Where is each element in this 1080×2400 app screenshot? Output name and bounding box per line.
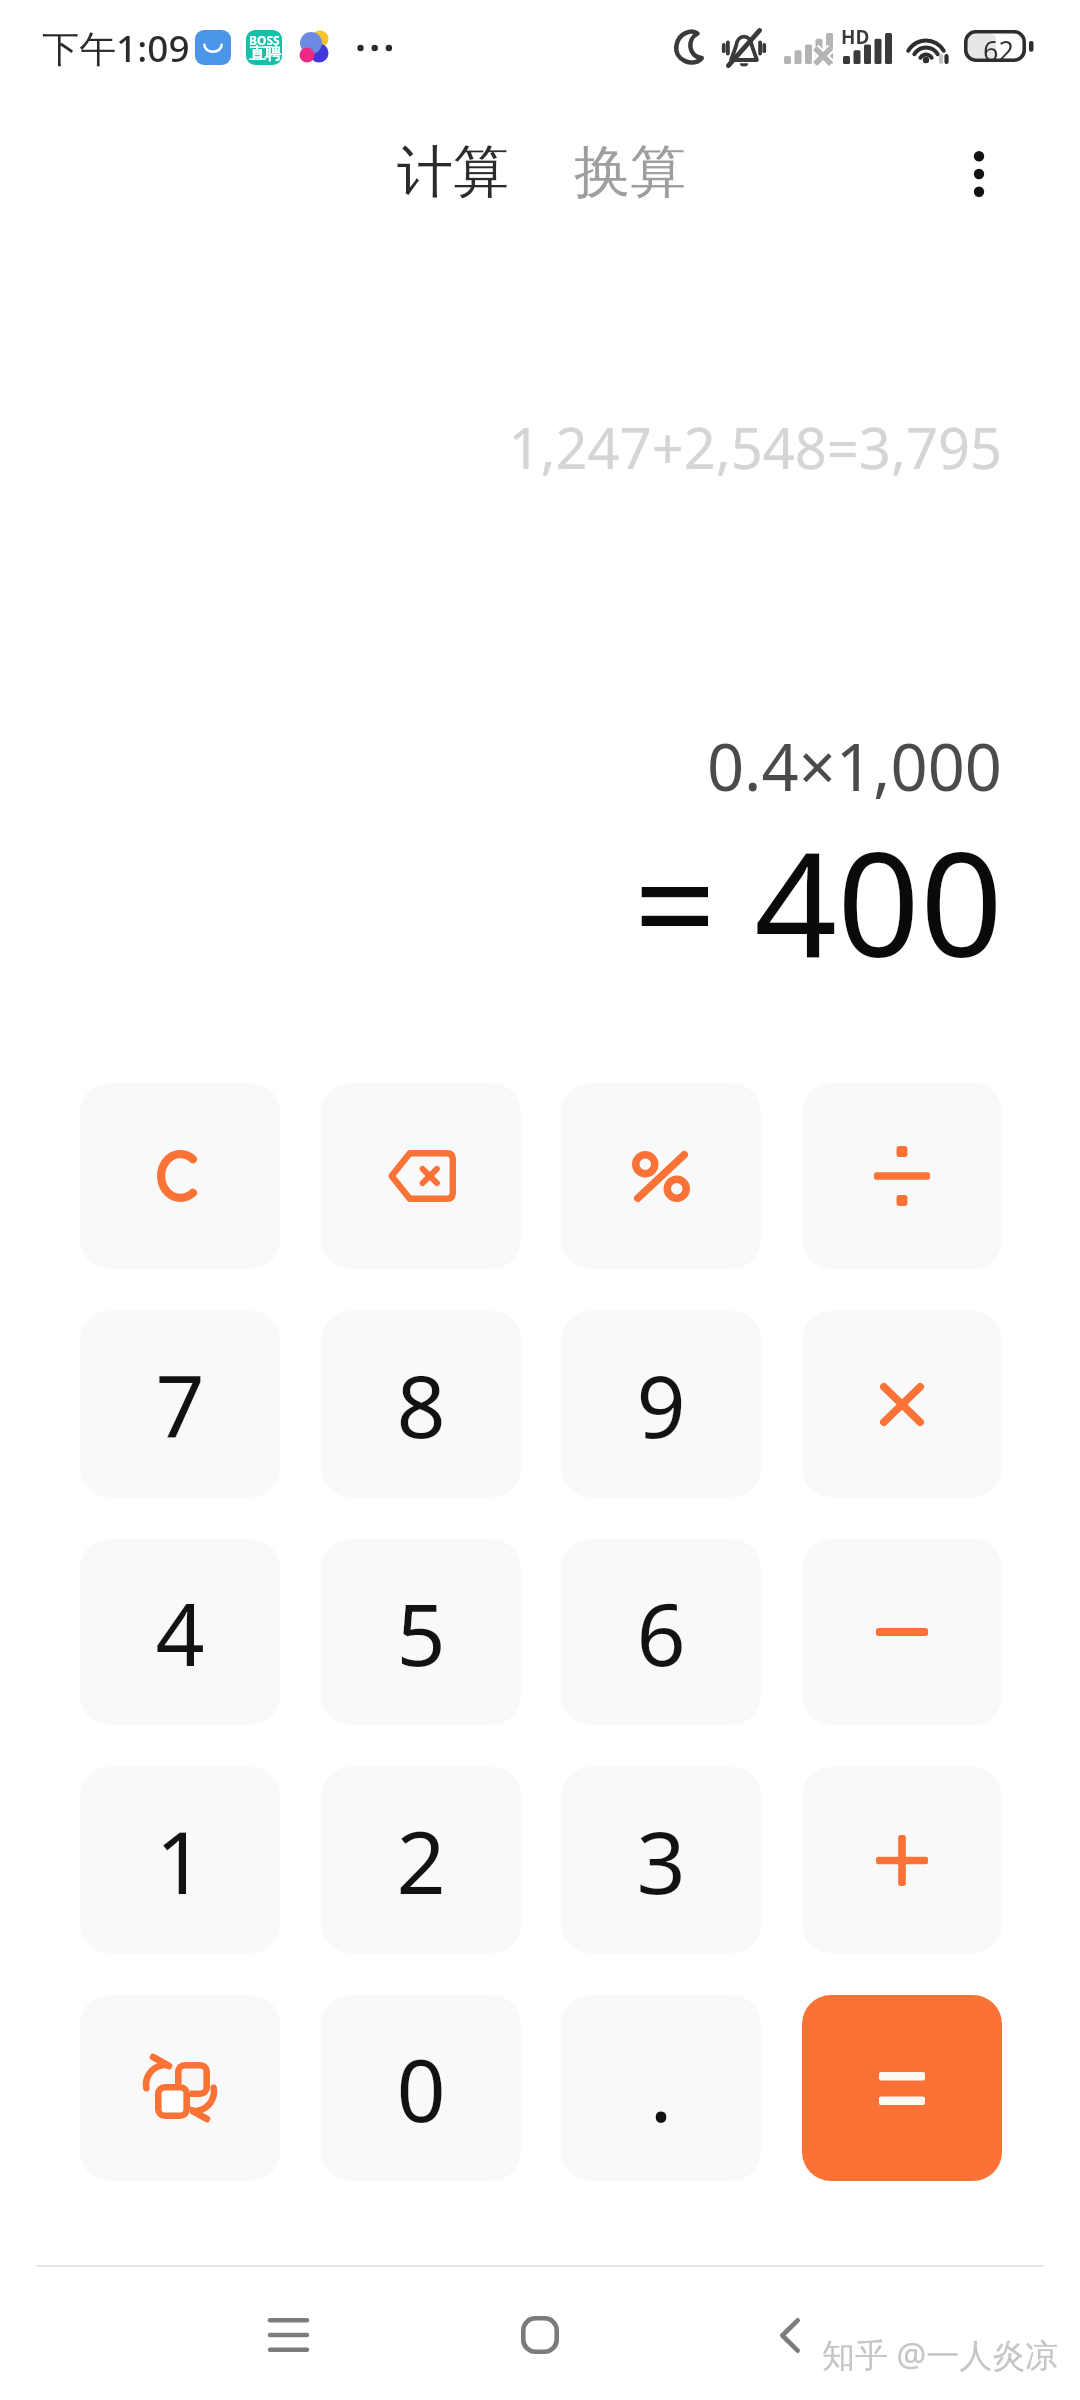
button[interactable]: More options bbox=[939, 134, 1019, 214]
staticText: 1,247+2,548=3,795 bbox=[0, 409, 1002, 485]
staticText: 下午1:09 bbox=[42, 22, 190, 73]
staticText: 1 bbox=[155, 1802, 205, 1919]
staticText: 7 bbox=[155, 1346, 205, 1463]
button[interactable]: 0 bbox=[321, 1995, 521, 2181]
staticText: 5 bbox=[396, 1574, 446, 1691]
button[interactable]: 7 bbox=[80, 1311, 280, 1497]
button[interactable]: 2 bbox=[321, 1767, 521, 1953]
button[interactable]: Convert bbox=[80, 1995, 280, 2181]
staticText: 换算 bbox=[574, 137, 686, 208]
staticText: 计算 bbox=[397, 137, 509, 208]
staticText: HD bbox=[841, 24, 870, 50]
staticText: 直聘 bbox=[249, 44, 281, 64]
staticText: 0.4×1,000 bbox=[0, 722, 1002, 811]
button[interactable]: Back bbox=[730, 2275, 850, 2395]
button[interactable]: 4 bbox=[80, 1539, 280, 1725]
button[interactable]: 8 bbox=[321, 1311, 521, 1497]
staticText: 6 bbox=[636, 1574, 686, 1691]
staticText: = 400 bbox=[0, 802, 1003, 999]
button[interactable]: 换算 bbox=[557, 130, 702, 214]
staticText: 2 bbox=[396, 1802, 446, 1919]
button[interactable]: Home bbox=[480, 2275, 600, 2395]
button[interactable]: 5 bbox=[321, 1539, 521, 1725]
staticText: 0 bbox=[396, 2030, 446, 2147]
staticText: 3 bbox=[636, 1802, 686, 1919]
button[interactable]: Plus bbox=[802, 1767, 1002, 1953]
staticText: BOSS bbox=[249, 32, 280, 48]
button[interactable]: Decimal point bbox=[561, 1995, 761, 2181]
button[interactable]: Backspace bbox=[321, 1083, 521, 1269]
button[interactable]: Equals bbox=[802, 1995, 1002, 2181]
staticText: 8 bbox=[396, 1346, 446, 1463]
button[interactable]: Multiply bbox=[802, 1311, 1002, 1497]
button[interactable]: 计算 bbox=[380, 130, 525, 214]
staticText: . bbox=[649, 2030, 673, 2147]
button[interactable]: Minus bbox=[802, 1539, 1002, 1725]
staticText: 知乎 @一人炎凉 bbox=[822, 2332, 1059, 2377]
button[interactable]: Clear bbox=[80, 1083, 280, 1269]
button[interactable]: Percent bbox=[561, 1083, 761, 1269]
button[interactable]: 6 bbox=[561, 1539, 761, 1725]
staticText: 4 bbox=[155, 1574, 205, 1691]
button[interactable]: 1 bbox=[80, 1767, 280, 1953]
button[interactable]: Divide bbox=[802, 1083, 1002, 1269]
staticText: 62 bbox=[983, 32, 1014, 64]
button[interactable]: 3 bbox=[561, 1767, 761, 1953]
staticText: 9 bbox=[636, 1346, 686, 1463]
button[interactable]: Recent apps bbox=[228, 2275, 348, 2395]
button[interactable]: 9 bbox=[561, 1311, 761, 1497]
